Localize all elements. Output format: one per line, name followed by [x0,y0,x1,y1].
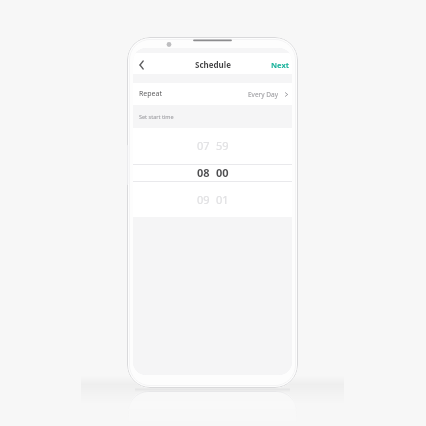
button[interactable]: Repeat [133,83,292,105]
staticText: 01 [216,192,229,207]
staticText: Schedule [195,59,231,70]
staticText: 08 [197,165,210,180]
staticText: Set start time [139,113,174,120]
button[interactable]: Back [133,53,153,74]
staticText: Every Day [248,90,278,99]
staticText: 09 [197,192,210,207]
button[interactable]: Next [268,53,292,74]
staticText: 07 [197,138,210,153]
staticText: 59 [216,138,229,153]
staticText: Next [271,60,290,70]
staticText: 00 [216,165,229,180]
staticText: Repeat [139,89,163,99]
